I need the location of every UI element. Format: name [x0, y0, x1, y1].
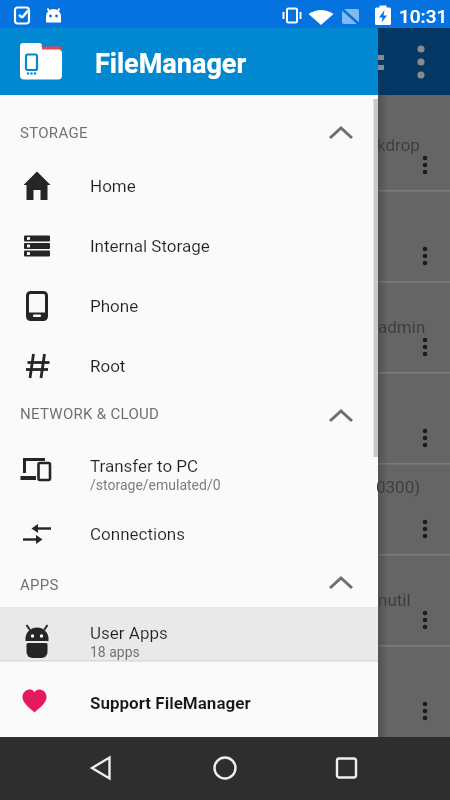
staticText: kdrop: [377, 135, 420, 155]
staticText: Root: [90, 356, 126, 376]
button[interactable]: Support FileManager: [0, 673, 378, 733]
button[interactable]: [195, 740, 255, 796]
staticText: 0300): [376, 477, 421, 497]
button[interactable]: Home: [0, 158, 378, 214]
staticText: Home: [90, 176, 136, 196]
staticText: Connections: [90, 524, 186, 544]
staticText: 10:31: [399, 5, 448, 27]
staticText: Transfer to PC: [90, 456, 199, 476]
button[interactable]: Phone: [0, 278, 378, 334]
button[interactable]: Root: [0, 338, 378, 394]
staticText: Support FileManager: [90, 693, 251, 713]
button[interactable]: [70, 740, 130, 796]
button[interactable]: Connections: [0, 506, 378, 562]
staticText: User Apps: [90, 623, 168, 643]
staticText: admin: [378, 317, 426, 337]
button[interactable]: Internal Storage: [0, 218, 378, 274]
button[interactable]: NETWORK & CLOUD: [0, 396, 378, 434]
staticText: Internal Storage: [90, 236, 210, 256]
button[interactable]: User Apps: [0, 607, 378, 660]
staticText: STORAGE: [20, 124, 88, 142]
staticText: Phone: [90, 296, 139, 316]
button[interactable]: APPS: [0, 567, 378, 605]
staticText: 18 apps: [90, 644, 140, 660]
staticText: FileManager: [95, 48, 247, 80]
staticText: nutil: [378, 590, 411, 610]
staticText: NETWORK & CLOUD: [20, 405, 160, 423]
staticText: APPS: [20, 576, 59, 594]
button[interactable]: [316, 740, 376, 796]
staticText: /storage/emulated/0: [90, 477, 221, 493]
button[interactable]: STORAGE: [0, 115, 378, 153]
button[interactable]: Transfer to PC: [0, 440, 378, 500]
